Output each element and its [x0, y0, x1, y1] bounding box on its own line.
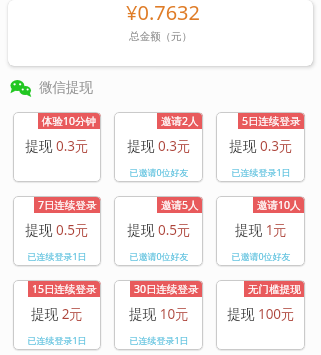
button[interactable]: 邀请10人 [216, 196, 305, 266]
button[interactable]: 15日连续登录 [13, 280, 101, 350]
staticText: 总金额（元） [129, 30, 192, 43]
staticText: 提现 2元 [31, 305, 83, 323]
staticText: 提现 10元 [129, 305, 189, 323]
staticText: 15日连续登录 [32, 282, 97, 296]
button[interactable]: 邀请2人 [114, 112, 203, 182]
staticText: 7日连续登录 [38, 198, 97, 212]
staticText: 已连续登录1日 [231, 166, 291, 178]
button[interactable]: 无门槛提现 [216, 280, 305, 350]
button[interactable]: 邀请5人 [114, 196, 203, 266]
staticText: 30日连续登录 [134, 282, 199, 296]
staticText: 提现 100元 [227, 305, 295, 323]
button[interactable]: 5日连续登录 [216, 112, 305, 182]
staticText: 已邀请0位好友 [129, 250, 189, 262]
staticText: ¥0.7632 [126, 0, 200, 26]
button[interactable]: 7日连续登录 [13, 196, 101, 266]
other: WeChat [10, 79, 32, 96]
staticText: 提现 1元 [235, 221, 287, 239]
staticText: 邀请2人 [161, 114, 199, 128]
staticText: 提现 0.5元 [25, 221, 89, 239]
staticText: 体验10分钟 [42, 114, 97, 128]
staticText: 邀请5人 [161, 198, 199, 212]
staticText: 已连续登录1日 [129, 334, 189, 346]
staticText: 提现 0.3元 [229, 137, 293, 155]
staticText: 已连续登录1日 [27, 334, 87, 346]
staticText: 无门槛提现 [248, 283, 301, 296]
staticText: 微信提现 [39, 79, 93, 96]
staticText: 5日连续登录 [242, 114, 301, 128]
staticText: 提现 0.5元 [127, 221, 191, 239]
staticText: 已邀请0位好友 [129, 166, 189, 178]
staticText: 提现 0.3元 [127, 137, 191, 155]
button[interactable]: 体验10分钟 [13, 112, 101, 182]
staticText: 已连续登录1日 [27, 250, 87, 262]
staticText: 已邀请0位好友 [231, 250, 291, 262]
button[interactable]: 30日连续登录 [114, 280, 203, 350]
staticText: 邀请10人 [257, 198, 301, 212]
staticText: 提现 0.3元 [25, 137, 89, 155]
